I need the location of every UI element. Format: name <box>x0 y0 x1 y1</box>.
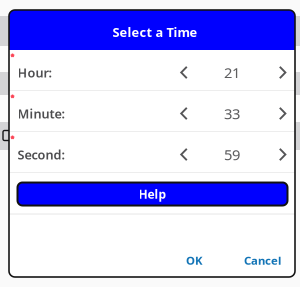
staticText: Second: <box>17 146 64 163</box>
button[interactable]: Increase Hour: <box>276 55 290 89</box>
staticText: Help <box>138 186 166 202</box>
button[interactable]: Increase Minute: <box>276 96 290 130</box>
button[interactable]: Decrease Second: <box>177 137 191 171</box>
button[interactable]: Increase Second: <box>276 137 290 171</box>
staticText: 59 <box>224 144 240 164</box>
button[interactable]: OK <box>176 246 213 275</box>
button[interactable]: Help <box>9 173 295 213</box>
staticText: Hour: <box>17 64 51 81</box>
staticText: Select a Time <box>112 23 197 41</box>
staticText: OK <box>186 253 203 268</box>
staticText: Cancel <box>244 253 281 268</box>
button[interactable]: Decrease Hour: <box>177 55 191 89</box>
staticText: 21 <box>224 62 240 82</box>
button[interactable]: Decrease Minute: <box>177 96 191 130</box>
staticText: 33 <box>224 103 240 123</box>
staticText: Minute: <box>17 105 64 122</box>
button[interactable]: Cancel <box>234 246 291 275</box>
